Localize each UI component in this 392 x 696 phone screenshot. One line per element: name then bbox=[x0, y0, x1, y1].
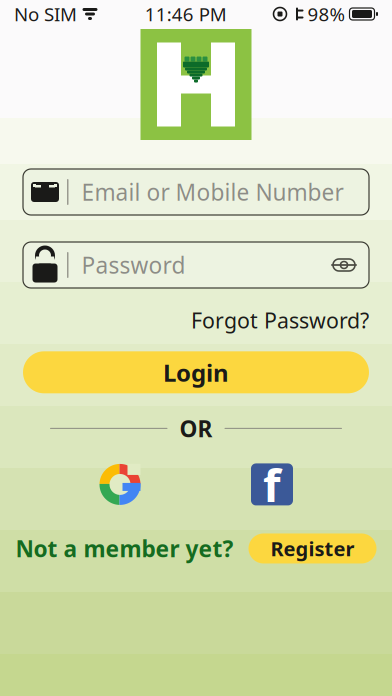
staticText: OR bbox=[179, 413, 212, 443]
staticText: Email or Mobile Number bbox=[81, 177, 343, 207]
button[interactable]: Register bbox=[248, 533, 376, 563]
staticText: Forgot Password? bbox=[191, 306, 369, 334]
button[interactable]: Forgot Password? bbox=[191, 302, 369, 338]
button[interactable]: Sign in with Facebook bbox=[241, 461, 303, 507]
staticText: Password bbox=[81, 250, 185, 280]
button[interactable]: Sign in with Google bbox=[89, 461, 151, 507]
staticText: Not a member yet? bbox=[15, 533, 233, 563]
staticText: 98% bbox=[307, 2, 345, 26]
button[interactable]: Login bbox=[23, 351, 369, 393]
staticText: No SIM bbox=[14, 2, 77, 26]
staticText: Register bbox=[270, 535, 354, 562]
staticText: f bbox=[263, 454, 281, 514]
staticText: Login bbox=[163, 356, 229, 388]
staticText: 11:46 PM bbox=[145, 2, 227, 26]
